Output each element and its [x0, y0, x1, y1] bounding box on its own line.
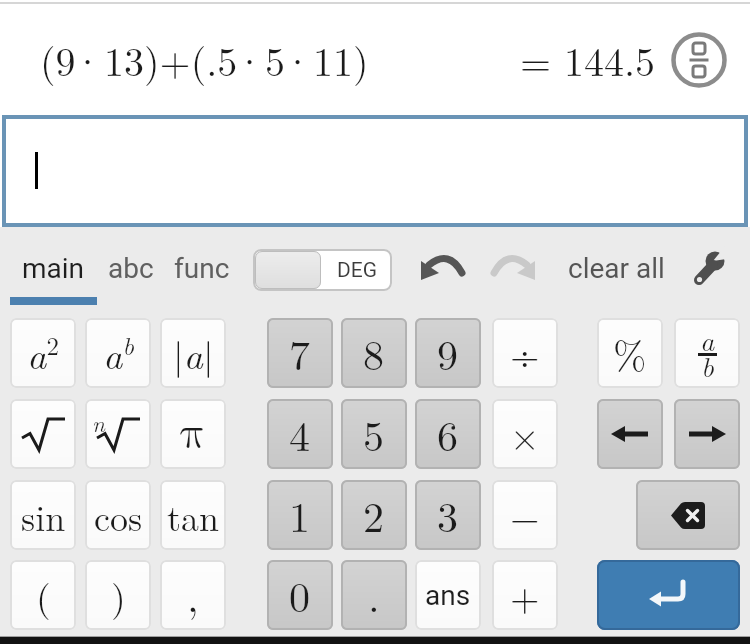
button[interactable]: 6 — [415, 399, 481, 469]
staticText: tan — [167, 490, 220, 541]
button[interactable]: 8 — [341, 318, 407, 388]
button[interactable]: 5 — [341, 399, 407, 469]
button[interactable] — [690, 244, 734, 288]
staticText: sin — [21, 490, 66, 541]
staticText: ÷ — [510, 326, 540, 380]
staticText: 4 — [289, 404, 311, 464]
button[interactable]: ) — [85, 560, 151, 630]
staticText: 0 — [289, 565, 311, 625]
button[interactable]: ( — [10, 560, 76, 630]
button[interactable] — [491, 253, 537, 285]
staticText: · — [234, 31, 266, 88]
staticText: π — [180, 412, 206, 456]
staticText: 13)+(.5 — [104, 31, 238, 88]
button[interactable]: 0 — [267, 560, 333, 630]
button[interactable]: . — [341, 560, 407, 630]
button[interactable]: DEG — [253, 249, 392, 291]
staticText: 8 — [363, 323, 385, 383]
staticText: abc — [108, 252, 154, 285]
button[interactable]: ÷ — [492, 318, 558, 388]
staticText: a2 — [27, 326, 59, 380]
staticText: DEG — [337, 258, 378, 283]
staticText: func — [174, 252, 230, 285]
button[interactable]: 3 — [415, 480, 481, 550]
button[interactable]: ab — [85, 318, 151, 388]
button[interactable]: , — [160, 560, 226, 630]
staticText: (9 — [40, 31, 76, 88]
staticText: . — [368, 565, 380, 625]
button[interactable] — [419, 253, 465, 285]
staticText: = — [520, 31, 552, 88]
button[interactable] — [671, 32, 727, 88]
button[interactable]: sin — [10, 480, 76, 550]
staticText: 11) — [313, 31, 369, 88]
staticText: 9 — [437, 323, 459, 383]
staticText: 2 — [363, 485, 385, 545]
button[interactable]: (9 — [0, 4, 750, 115]
button[interactable]: n — [85, 399, 151, 469]
button[interactable] — [636, 480, 740, 550]
staticText: 3 — [437, 485, 459, 545]
button[interactable] — [597, 399, 663, 469]
button[interactable]: × — [492, 399, 558, 469]
staticText: ans — [425, 579, 471, 612]
staticText: |a| — [173, 326, 214, 380]
button[interactable] — [597, 560, 740, 630]
staticText: 5 — [265, 31, 285, 88]
staticText: 7 — [289, 323, 311, 383]
staticText: clear all — [568, 252, 665, 285]
button[interactable]: % — [597, 318, 663, 388]
button[interactable]: 1 — [267, 480, 333, 550]
staticText: n — [92, 406, 105, 439]
staticText: · — [282, 31, 314, 88]
staticText: b — [701, 345, 714, 385]
staticText: 144.5 — [564, 31, 656, 88]
button[interactable]: 7 — [267, 318, 333, 388]
button[interactable]: 4 — [267, 399, 333, 469]
button[interactable]: |a| — [160, 318, 226, 388]
button[interactable]: a2 — [10, 318, 76, 388]
button[interactable] — [10, 399, 76, 469]
button[interactable]: clear all — [558, 240, 674, 297]
button[interactable]: 9 — [415, 318, 481, 388]
staticText: + — [510, 568, 540, 622]
staticText: ) — [111, 568, 126, 622]
button[interactable]: a — [674, 318, 740, 388]
button[interactable]: + — [492, 560, 558, 630]
staticText: 1 — [289, 485, 311, 545]
button[interactable]: 2 — [341, 480, 407, 550]
staticText: 6 — [437, 404, 459, 464]
staticText: cos — [94, 490, 143, 541]
button[interactable] — [2, 115, 748, 227]
staticText: ab — [103, 326, 134, 380]
staticText: % — [613, 325, 647, 382]
staticText: − — [510, 488, 540, 542]
button[interactable]: π — [160, 399, 226, 469]
button[interactable]: ans — [415, 560, 481, 630]
staticText: a — [700, 319, 715, 359]
staticText: main — [22, 252, 85, 285]
staticText: · — [72, 31, 104, 88]
staticText: 5 — [363, 404, 385, 464]
staticText: × — [510, 407, 540, 461]
staticText: ( — [36, 568, 51, 622]
staticText: , — [187, 565, 199, 625]
button[interactable]: func — [166, 240, 238, 297]
button[interactable]: main — [10, 240, 97, 297]
button[interactable]: abc — [100, 240, 162, 297]
button[interactable]: cos — [85, 480, 151, 550]
button[interactable] — [674, 399, 740, 469]
button[interactable]: tan — [160, 480, 226, 550]
button[interactable]: − — [492, 480, 558, 550]
